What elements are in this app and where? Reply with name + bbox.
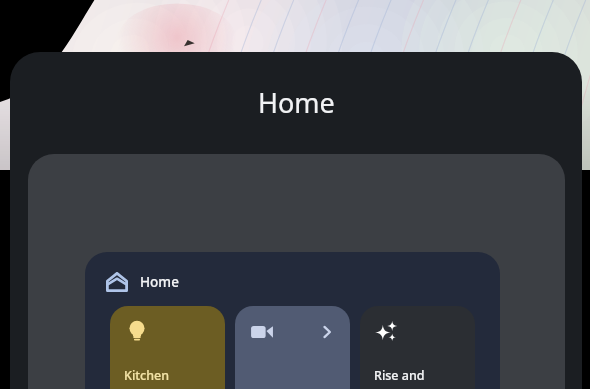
staticText: Home [140,273,179,291]
staticText: Kitchen [124,367,170,384]
button[interactable]: Kitchen [110,306,225,389]
button[interactable]: Cameras [235,306,350,389]
button[interactable]: Home [105,270,179,294]
button[interactable]: Home [85,252,500,389]
staticText: Home [258,84,335,121]
button[interactable]: Rise and [360,306,475,389]
staticText: Rise and [374,367,425,384]
